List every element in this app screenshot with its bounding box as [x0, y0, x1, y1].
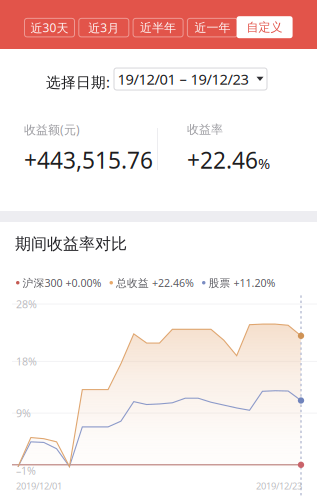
staticText: 19/12/01 – 19/12/23: [117, 69, 248, 89]
button[interactable]: 自定义: [237, 16, 293, 38]
button[interactable]: 近一年: [187, 18, 237, 37]
staticText: +443,515.76: [24, 145, 153, 175]
staticText: 沪深300 +0.00%: [22, 276, 101, 290]
button[interactable]: 19/12/01 – 19/12/23: [114, 68, 267, 90]
button[interactable]: 近30天: [24, 18, 74, 37]
staticText: 近3月: [88, 20, 119, 36]
staticText: 2019/12/23: [256, 480, 302, 492]
staticText: –1%: [16, 463, 36, 478]
staticText: 自定义: [247, 20, 283, 34]
staticText: 近半年: [140, 20, 176, 35]
staticText: 近30天: [30, 20, 68, 36]
staticText: +22.46: [187, 145, 258, 175]
staticText: 收益额(元): [24, 121, 80, 137]
staticText: 股票 +11.20%: [208, 276, 275, 290]
staticText: 28%: [16, 297, 37, 311]
staticText: %: [258, 154, 270, 173]
staticText: 18%: [16, 354, 37, 369]
staticText: 2019/12/01: [16, 480, 62, 492]
button[interactable]: 近半年: [133, 18, 183, 37]
staticText: 9%: [16, 406, 31, 420]
staticText: 期间收益率对比: [15, 234, 127, 254]
staticText: 选择日期:: [46, 72, 110, 92]
staticText: 收益率: [187, 122, 223, 137]
staticText: 近一年: [194, 20, 230, 35]
staticText: 总收益 +22.46%: [116, 276, 194, 290]
button[interactable]: 近3月: [79, 18, 129, 37]
